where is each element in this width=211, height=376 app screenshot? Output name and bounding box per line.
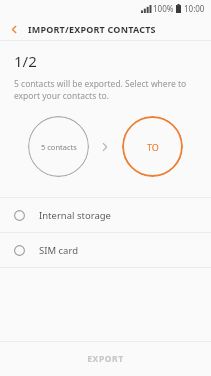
staticText: IMPORT/EXPORT CONTACTS: [28, 23, 156, 35]
button[interactable]: 5 contacts: [28, 116, 89, 177]
staticText: 5 contacts will be exported. Select wher…: [14, 78, 187, 102]
staticText: 100%: [153, 3, 174, 14]
staticText: 5 contacts: [41, 142, 77, 152]
staticText: TO: [147, 141, 159, 153]
button[interactable]: Internal storage: [0, 198, 211, 232]
button[interactable]: EXPORT: [0, 342, 211, 376]
button[interactable]: Back: [0, 17, 28, 41]
button[interactable]: SIM card: [0, 233, 211, 267]
button[interactable]: TO: [122, 116, 183, 177]
staticText: 10:00: [184, 3, 205, 14]
staticText: Internal storage: [39, 209, 111, 222]
staticText: 1/2: [14, 51, 37, 71]
staticText: SIM card: [39, 244, 78, 257]
staticText: EXPORT: [87, 353, 124, 365]
